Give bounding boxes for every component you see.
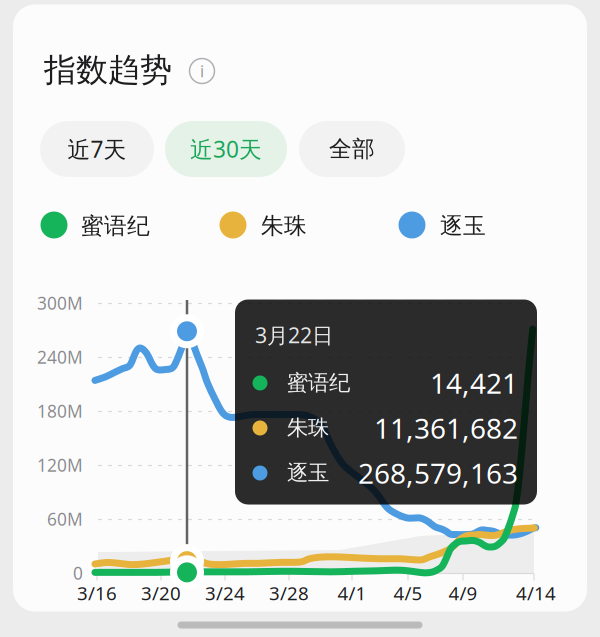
- staticText: 近7天: [67, 134, 126, 164]
- button[interactable]: 关于指数趋势: [189, 58, 214, 83]
- staticText: 3/16: [77, 581, 117, 605]
- staticText: 180M: [37, 399, 83, 422]
- staticText: 4/1: [337, 581, 366, 605]
- staticText: 4/14: [516, 581, 556, 605]
- button[interactable]: 全部: [299, 121, 405, 177]
- staticText: 朱珠: [261, 212, 307, 240]
- staticText: i: [200, 60, 204, 82]
- staticText: 4/5: [393, 581, 422, 605]
- staticText: 近30天: [190, 134, 262, 164]
- staticText: 14,421: [430, 364, 518, 402]
- button[interactable]: 近7天: [40, 121, 154, 177]
- staticText: 240M: [37, 345, 83, 368]
- staticText: 蜜语纪: [287, 370, 350, 396]
- staticText: 3/28: [269, 581, 309, 605]
- button[interactable]: 近30天: [165, 121, 287, 177]
- staticText: 3/20: [141, 581, 181, 605]
- staticText: 朱珠: [287, 415, 329, 441]
- staticText: 指数趋势: [44, 50, 172, 90]
- staticText: 268,579,163: [358, 454, 518, 492]
- staticText: 逐玉: [287, 460, 329, 486]
- staticText: 3/24: [205, 581, 245, 605]
- staticText: 全部: [329, 135, 375, 163]
- staticText: 逐玉: [440, 212, 486, 240]
- staticText: 4/9: [448, 581, 477, 605]
- staticText: 120M: [37, 453, 83, 476]
- staticText: 0: [73, 561, 83, 584]
- staticText: 60M: [47, 507, 83, 530]
- staticText: 蜜语纪: [81, 212, 150, 240]
- staticText: 300M: [37, 291, 83, 314]
- staticText: 3月22日: [255, 321, 333, 349]
- staticText: 11,361,682: [374, 409, 518, 447]
